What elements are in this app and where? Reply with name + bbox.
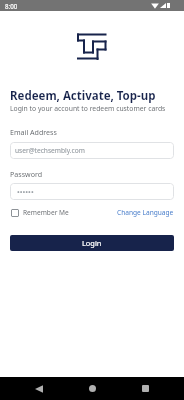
button[interactable]: Change Language <box>117 208 174 217</box>
button[interactable]: Back <box>22 377 56 400</box>
button[interactable]: •••••• <box>10 183 174 200</box>
staticText: Password <box>10 169 43 179</box>
button[interactable]: Recent apps <box>128 377 162 400</box>
staticText: Login to your account to redeem customer… <box>10 104 166 113</box>
staticText: user@techsembly.com <box>15 146 85 155</box>
button[interactable]: Remember Me <box>10 208 69 217</box>
staticText: Email Address <box>10 127 57 137</box>
staticText: Remember Me <box>23 208 69 217</box>
button[interactable]: Login <box>10 235 174 251</box>
button[interactable]: user@techsembly.com <box>10 142 174 159</box>
button[interactable]: Home <box>75 377 109 400</box>
staticText: 8:00 <box>5 2 18 10</box>
staticText: Redeem, Activate, Top-up <box>10 88 156 104</box>
staticText: •••••• <box>17 187 34 197</box>
staticText: Login <box>82 238 102 248</box>
